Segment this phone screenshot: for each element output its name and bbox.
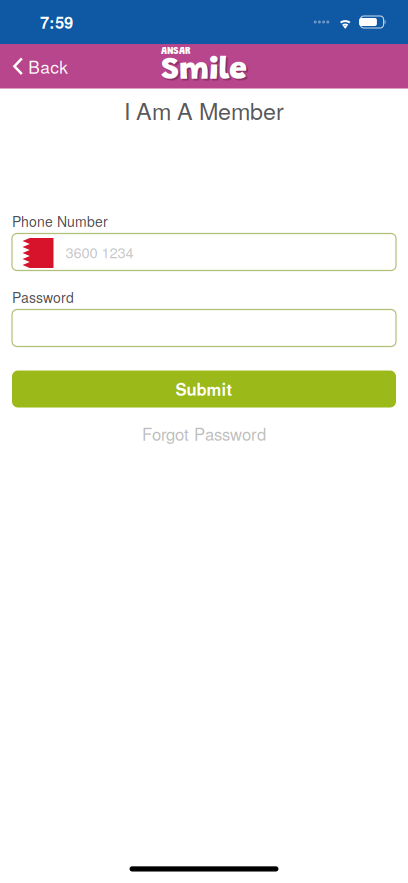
staticText: ANSAR (161, 47, 190, 57)
button[interactable]: Submit (12, 370, 396, 407)
button[interactable]: Forgot Password (12, 423, 396, 443)
staticText: Password (12, 287, 74, 307)
button[interactable]: Back (0, 44, 94, 88)
staticText: Smile (161, 55, 247, 87)
staticText: Forgot Password (142, 422, 266, 445)
staticText: I Am A Member (124, 93, 284, 127)
staticText: Smile (163, 57, 249, 89)
staticText: 3600 1234 (65, 241, 133, 262)
staticText: Submit (175, 377, 232, 401)
staticText: 7:59 (40, 10, 73, 34)
staticText: Phone Number (12, 211, 108, 231)
staticText: Back (28, 54, 68, 79)
